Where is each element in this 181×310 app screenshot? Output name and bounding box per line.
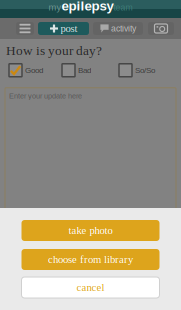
staticText: So/So <box>135 66 155 75</box>
staticText: cancel <box>76 282 104 293</box>
button[interactable]: Good <box>9 64 45 77</box>
button[interactable]: So/So <box>119 64 157 77</box>
staticText: How is your day? <box>6 43 102 58</box>
button[interactable]: activity <box>93 22 143 35</box>
staticText: Good <box>25 66 43 75</box>
staticText: my <box>48 2 61 13</box>
button[interactable]: post <box>38 22 89 35</box>
button[interactable]: Camera <box>148 22 174 35</box>
staticText: epilepsy <box>61 0 113 13</box>
staticText: post <box>60 23 77 34</box>
staticText: Bad <box>78 66 91 75</box>
staticText: team <box>113 3 132 12</box>
button[interactable]: choose from library <box>21 249 159 270</box>
staticText: choose from library <box>48 254 133 265</box>
staticText: Enter your update here <box>9 92 82 100</box>
button[interactable]: cancel <box>21 277 159 298</box>
button[interactable]: Bad <box>62 64 94 77</box>
staticText: take photo <box>68 225 112 236</box>
button[interactable]: Menu <box>16 22 34 35</box>
button[interactable]: take photo <box>21 220 159 241</box>
staticText: activity <box>111 24 136 33</box>
